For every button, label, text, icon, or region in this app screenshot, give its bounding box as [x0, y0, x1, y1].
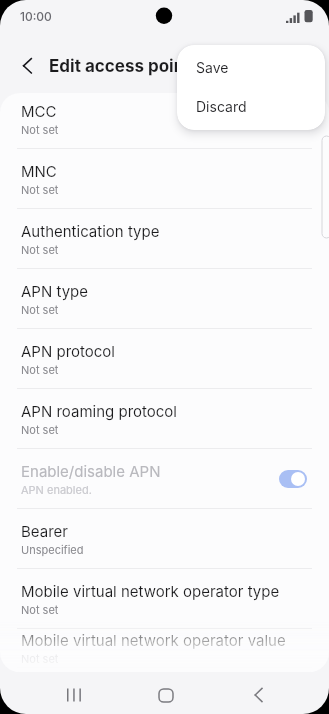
staticText: Not set — [21, 423, 59, 436]
staticText: Save — [196, 59, 229, 76]
staticText: Not set — [21, 603, 59, 616]
button[interactable]: APN protocol — [0, 329, 329, 389]
staticText: Not set — [21, 123, 59, 136]
staticText: Not set — [21, 243, 59, 256]
button[interactable]: Enable/disable APN — [0, 449, 329, 509]
staticText: Not set — [21, 363, 59, 376]
staticText: APN enabled. — [21, 483, 92, 496]
button[interactable]: Home — [144, 674, 188, 714]
button[interactable]: Save — [177, 48, 325, 87]
staticText: MCC — [21, 102, 57, 120]
button[interactable]: Bearer — [0, 509, 329, 569]
staticText: Not set — [21, 303, 59, 316]
staticText: APN roaming protocol — [21, 402, 177, 420]
button[interactable]: Back — [236, 674, 280, 714]
button[interactable]: Enable APN — [279, 470, 307, 488]
staticText: Mobile virtual network operator value — [21, 631, 286, 649]
button[interactable]: Recent apps — [52, 674, 96, 714]
staticText: Enable/disable APN — [21, 462, 161, 480]
staticText: Discard — [196, 98, 247, 115]
staticText: Bearer — [21, 522, 68, 540]
button[interactable]: APN roaming protocol — [0, 389, 329, 449]
staticText: Unspecified — [21, 543, 84, 556]
button[interactable]: Mobile virtual network operator value — [0, 629, 329, 668]
button[interactable]: MCC — [0, 93, 329, 149]
staticText: APN protocol — [21, 342, 115, 360]
button[interactable]: Discard — [177, 87, 325, 126]
button[interactable]: Authentication type — [0, 209, 329, 269]
staticText: APN type — [21, 282, 89, 300]
button[interactable]: Navigate up — [0, 42, 49, 91]
button[interactable]: APN type — [0, 269, 329, 329]
staticText: Not set — [21, 183, 59, 196]
staticText: Authentication type — [21, 222, 160, 240]
staticText: Mobile virtual network operator type — [21, 582, 280, 600]
staticText: MNC — [21, 162, 57, 180]
staticText: Edit access point — [49, 56, 191, 77]
staticText: 10:00 — [20, 9, 52, 24]
button[interactable]: Mobile virtual network operator type — [0, 569, 329, 629]
staticText: Not set — [21, 652, 59, 665]
button[interactable]: MNC — [0, 149, 329, 209]
